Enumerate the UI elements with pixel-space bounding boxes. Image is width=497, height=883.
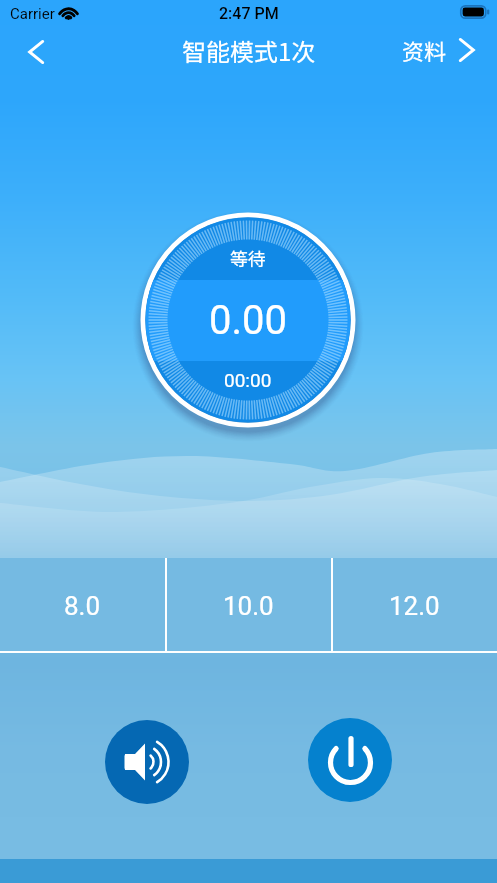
button[interactable]: Volume bbox=[105, 720, 189, 804]
button[interactable]: 8.0 bbox=[0, 558, 165, 653]
staticText: Carrier bbox=[10, 5, 55, 23]
button[interactable]: Back bbox=[10, 28, 62, 76]
staticText: 2:47 PM bbox=[219, 4, 279, 23]
staticText: 等待 bbox=[230, 245, 266, 271]
staticText: 8.0 bbox=[64, 591, 101, 621]
button[interactable]: 资料 bbox=[402, 34, 475, 66]
staticText: 10.0 bbox=[223, 591, 274, 621]
button[interactable]: Power bbox=[308, 718, 392, 802]
staticText: 智能模式1次 bbox=[182, 33, 316, 68]
button[interactable]: 10.0 bbox=[165, 558, 331, 653]
staticText: 12.0 bbox=[389, 591, 440, 621]
button[interactable]: 12.0 bbox=[331, 558, 497, 653]
staticText: 00:00 bbox=[224, 369, 272, 391]
staticText: 0.00 bbox=[209, 297, 287, 344]
staticText: 资料 bbox=[402, 34, 447, 66]
